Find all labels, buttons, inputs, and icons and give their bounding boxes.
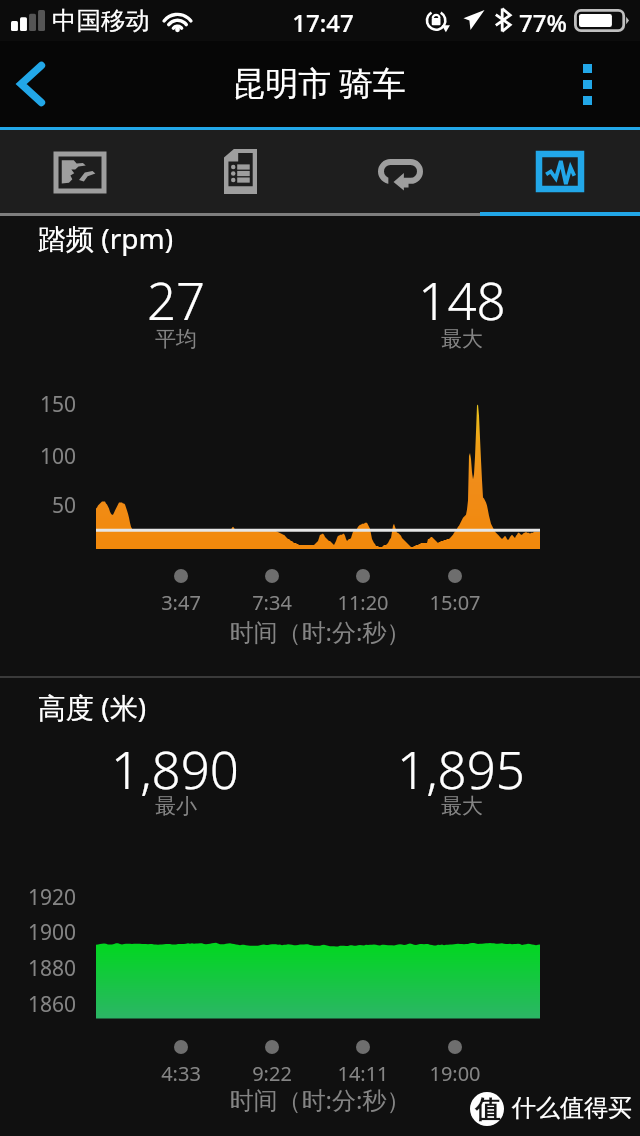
staticText: 平均 xyxy=(46,326,306,352)
staticText: 15:07 xyxy=(395,589,515,616)
staticText: 7:34 xyxy=(212,589,332,616)
staticText: 1,895 xyxy=(331,734,591,803)
staticText: 27 xyxy=(46,265,306,334)
staticText: 14:11 xyxy=(303,1060,423,1087)
button[interactable]: Back xyxy=(0,41,62,127)
staticText: 77% xyxy=(519,6,579,39)
staticText: 150 xyxy=(0,390,76,419)
staticText: 4:33 xyxy=(121,1060,241,1087)
button[interactable]: Map tab xyxy=(0,130,160,213)
button[interactable]: More options xyxy=(556,41,618,127)
staticText: 148 xyxy=(332,265,592,334)
staticText: 50 xyxy=(0,491,76,520)
staticText: 1900 xyxy=(0,918,76,947)
staticText: 高度 (米) xyxy=(38,688,438,726)
staticText: 中国移动 xyxy=(52,5,150,36)
staticText: 1,890 xyxy=(45,734,305,803)
button[interactable]: Details tab xyxy=(160,130,320,213)
staticText: 最小 xyxy=(46,793,306,819)
staticText: 时间（时:分:秒） xyxy=(0,1083,640,1116)
staticText: 1880 xyxy=(0,954,76,983)
staticText: 什么值得买 xyxy=(512,1093,640,1123)
staticText: 踏频 (rpm) xyxy=(38,219,438,257)
staticText: 1920 xyxy=(0,883,76,912)
staticText: 9:22 xyxy=(212,1060,332,1087)
staticText: 19:00 xyxy=(395,1060,515,1087)
staticText: 1860 xyxy=(0,990,76,1019)
staticText: 昆明市 骑车 xyxy=(159,60,479,105)
staticText: 100 xyxy=(0,442,76,471)
button[interactable]: Charts tab xyxy=(480,130,640,213)
staticText: 17:47 xyxy=(263,6,383,39)
staticText: 3:47 xyxy=(121,589,241,616)
button[interactable]: Laps tab xyxy=(320,130,480,213)
staticText: 最大 xyxy=(332,326,592,352)
staticText: 11:20 xyxy=(303,589,423,616)
staticText: 时间（时:分:秒） xyxy=(0,615,640,648)
staticText: 最大 xyxy=(332,793,592,819)
staticText: 值 xyxy=(475,1094,500,1125)
